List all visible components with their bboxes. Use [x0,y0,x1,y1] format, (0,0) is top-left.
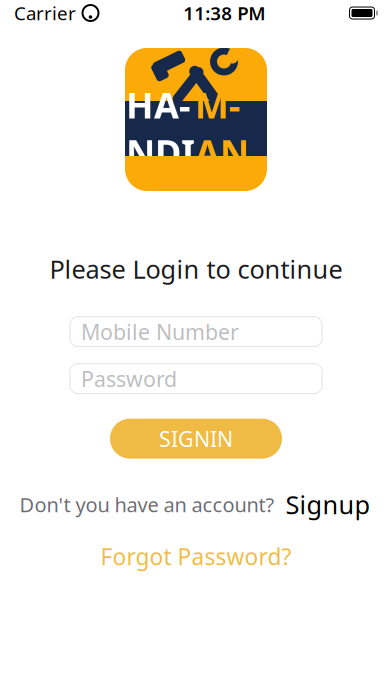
button[interactable]: Forgot Password? [90,538,301,574]
button[interactable]: Password [70,364,322,394]
staticText: 11:38 PM [183,1,265,25]
staticText: Carrier [14,1,76,25]
staticText: MAN [195,81,249,176]
staticText: Forgot Password? [100,541,291,571]
button[interactable]: Mobile Number [70,317,322,347]
button[interactable]: Signup [283,485,372,524]
staticText: Signup [285,488,370,521]
staticText: SIGNIN [159,424,233,453]
staticText: Please Login to continue [49,252,342,286]
button[interactable]: SIGNIN [110,419,282,459]
staticText: Password [81,364,177,393]
staticText: HANDI [126,81,195,176]
staticText: Mobile Number [81,317,239,346]
staticText: Don't you have an account? [19,491,274,518]
